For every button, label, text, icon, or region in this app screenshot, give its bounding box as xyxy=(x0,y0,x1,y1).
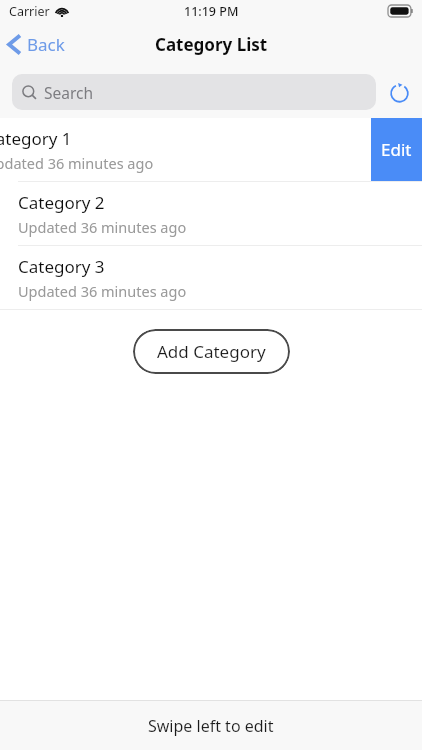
button[interactable]: Category 3 xyxy=(0,246,422,309)
staticText: Category 1 xyxy=(0,127,72,150)
staticText: Edit xyxy=(381,138,412,161)
staticText: Back xyxy=(27,33,65,56)
button[interactable]: Category 2 xyxy=(0,182,422,245)
button[interactable]: Back xyxy=(0,27,75,62)
staticText: Add Category xyxy=(157,340,266,363)
button[interactable]: Category 1 xyxy=(0,127,154,173)
button[interactable]: Refresh xyxy=(384,77,414,107)
staticText: Updated 36 minutes ago xyxy=(18,281,187,301)
staticText: Swipe left to edit xyxy=(148,715,274,737)
staticText: Category 3 xyxy=(18,255,105,278)
button[interactable]: Search xyxy=(12,74,376,110)
staticText: Updated 36 minutes ago xyxy=(0,153,154,173)
button[interactable]: Add Category xyxy=(133,329,290,374)
staticText: 11:19 PM xyxy=(184,3,239,20)
staticText: Carrier xyxy=(9,3,50,20)
button[interactable]: Edit xyxy=(371,118,422,181)
staticText: Updated 36 minutes ago xyxy=(18,217,187,237)
staticText: Category 2 xyxy=(18,191,105,214)
staticText: Category List xyxy=(155,33,268,56)
staticText: Search xyxy=(44,82,94,103)
